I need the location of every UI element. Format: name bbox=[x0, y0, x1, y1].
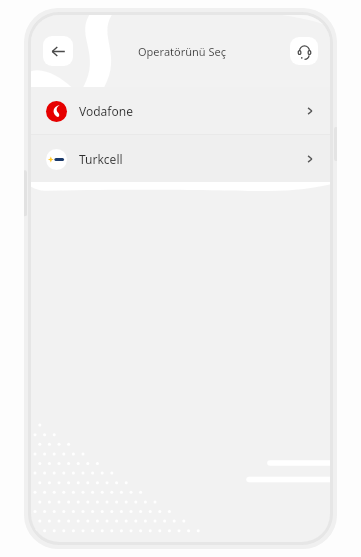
button[interactable]: Back bbox=[43, 36, 73, 66]
staticText: Vodafone bbox=[79, 103, 133, 119]
button[interactable]: Vodafone bbox=[31, 87, 330, 134]
button[interactable]: Support bbox=[290, 37, 318, 65]
button[interactable]: Turkcell bbox=[31, 135, 330, 182]
staticText: Operatörünü Seç bbox=[138, 44, 226, 59]
staticText: Turkcell bbox=[79, 151, 123, 167]
